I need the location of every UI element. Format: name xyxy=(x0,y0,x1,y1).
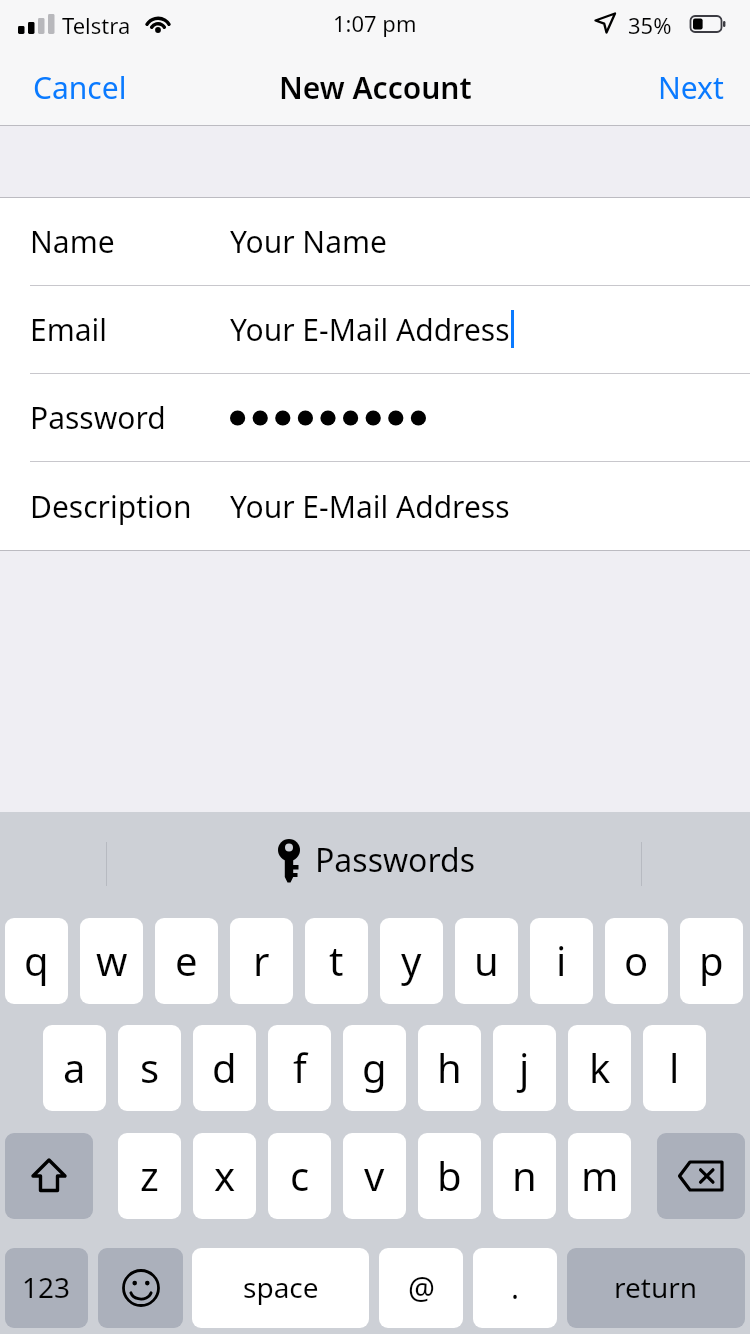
staticText: Description xyxy=(30,486,192,527)
button[interactable]: d xyxy=(193,1025,256,1111)
staticText: Your Name xyxy=(230,221,387,262)
staticText: c xyxy=(290,1148,310,1202)
button[interactable]: Description xyxy=(0,462,750,550)
button[interactable]: u xyxy=(455,918,518,1004)
staticText: . xyxy=(511,1267,520,1308)
staticText: m xyxy=(581,1148,619,1202)
button[interactable]: b xyxy=(418,1133,481,1219)
button[interactable]: @ xyxy=(379,1248,463,1328)
button[interactable]: Next xyxy=(640,48,750,126)
button[interactable]: f xyxy=(268,1025,331,1111)
staticText: f xyxy=(293,1040,307,1094)
staticText: e xyxy=(175,933,198,987)
staticText: Passwords xyxy=(315,838,476,882)
button[interactable]: j xyxy=(493,1025,556,1111)
staticText: Name xyxy=(30,221,115,262)
staticText: 1:07 pm xyxy=(333,8,417,38)
staticText: l xyxy=(669,1040,680,1094)
button[interactable]: q xyxy=(5,918,68,1004)
button[interactable]: r xyxy=(230,918,293,1004)
button[interactable]: n xyxy=(493,1133,556,1219)
staticText: p xyxy=(699,933,724,987)
staticText: 35% xyxy=(628,10,672,40)
button[interactable]: Name xyxy=(0,198,750,286)
staticText: z xyxy=(140,1148,159,1202)
staticText: 123 xyxy=(22,1268,71,1306)
button[interactable]: c xyxy=(268,1133,331,1219)
staticText: g xyxy=(362,1040,387,1094)
button[interactable]: v xyxy=(343,1133,406,1219)
button[interactable]: o xyxy=(605,918,668,1004)
button[interactable]: h xyxy=(418,1025,481,1111)
staticText: t xyxy=(329,933,344,987)
button[interactable]: space xyxy=(192,1248,369,1328)
staticText: Next xyxy=(658,67,724,108)
button[interactable]: g xyxy=(343,1025,406,1111)
staticText: return xyxy=(614,1268,698,1306)
staticText: h xyxy=(437,1040,462,1094)
button[interactable]: Passwords xyxy=(0,812,750,908)
button[interactable]: w xyxy=(80,918,143,1004)
staticText: i xyxy=(556,933,567,987)
button[interactable]: Emoji xyxy=(98,1248,183,1328)
staticText: j xyxy=(519,1040,530,1094)
button[interactable]: return xyxy=(567,1248,745,1328)
button[interactable]: s xyxy=(118,1025,181,1111)
button[interactable]: 123 xyxy=(5,1248,88,1328)
button[interactable]: l xyxy=(643,1025,706,1111)
button[interactable]: k xyxy=(568,1025,631,1111)
staticText: y xyxy=(401,933,422,987)
staticText: New Account xyxy=(279,67,472,108)
button[interactable]: Password xyxy=(0,374,750,462)
button[interactable]: p xyxy=(680,918,743,1004)
button[interactable]: Cancel xyxy=(0,48,145,126)
button[interactable]: y xyxy=(380,918,443,1004)
staticText: Password xyxy=(30,397,166,438)
button[interactable]: z xyxy=(118,1133,181,1219)
staticText: x xyxy=(214,1148,236,1202)
staticText: space xyxy=(243,1268,319,1306)
staticText: Cancel xyxy=(33,67,127,108)
button[interactable]: a xyxy=(43,1025,106,1111)
staticText: q xyxy=(24,933,49,987)
staticText: o xyxy=(624,933,649,987)
staticText: s xyxy=(140,1040,160,1094)
staticText: w xyxy=(96,933,128,987)
staticText: u xyxy=(474,933,499,987)
staticText: a xyxy=(63,1040,86,1094)
staticText: b xyxy=(437,1148,462,1202)
button[interactable]: Shift xyxy=(5,1133,93,1219)
button[interactable]: e xyxy=(155,918,218,1004)
button[interactable]: . xyxy=(473,1248,557,1328)
staticText: k xyxy=(589,1040,611,1094)
staticText: r xyxy=(253,933,270,987)
button[interactable]: Email xyxy=(0,286,750,374)
staticText: n xyxy=(512,1148,537,1202)
staticText: d xyxy=(212,1040,237,1094)
staticText: @ xyxy=(408,1267,435,1308)
staticText: Telstra xyxy=(62,10,131,40)
button[interactable]: i xyxy=(530,918,593,1004)
staticText: Your E-Mail Address xyxy=(230,309,510,350)
button[interactable]: t xyxy=(305,918,368,1004)
staticText: Email xyxy=(30,309,108,350)
staticText: v xyxy=(364,1148,385,1202)
button[interactable]: Delete xyxy=(657,1133,745,1219)
button[interactable]: x xyxy=(193,1133,256,1219)
button[interactable]: m xyxy=(568,1133,631,1219)
staticText: Your E-Mail Address xyxy=(230,486,510,527)
